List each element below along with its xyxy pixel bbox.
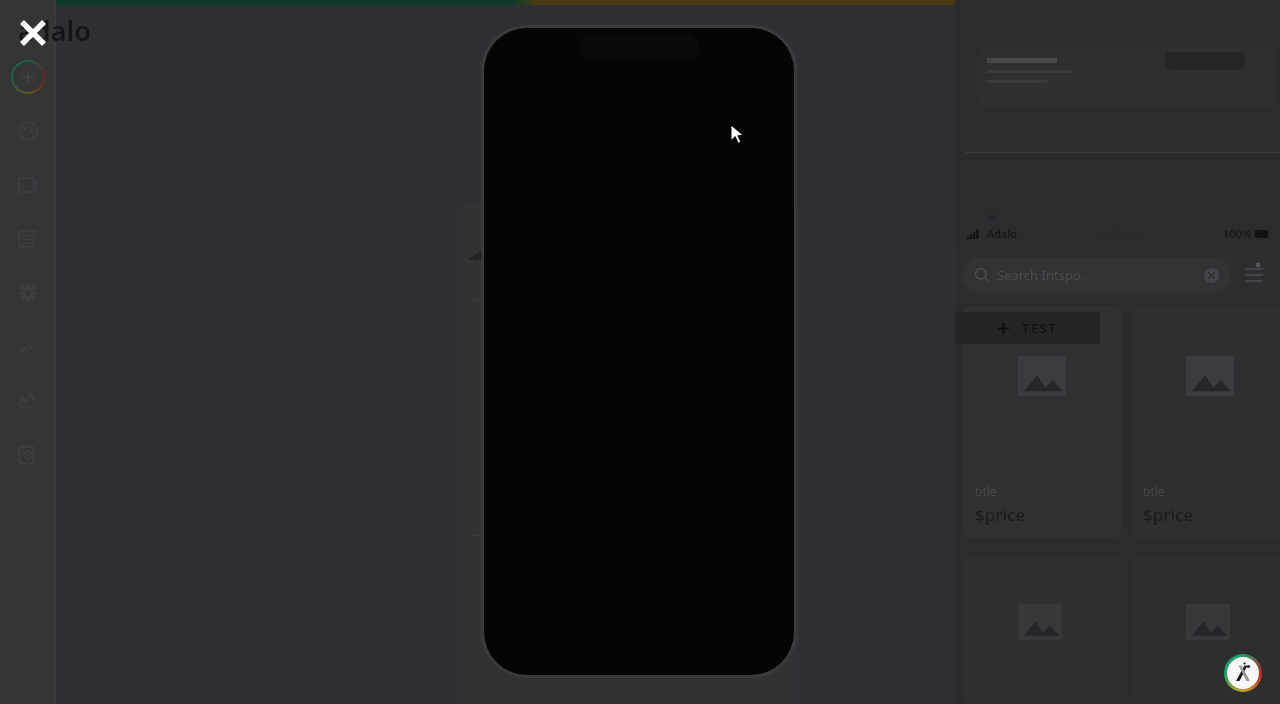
button[interactable]: Search Intspo. [963, 258, 1231, 292]
staticText: $price [975, 503, 1026, 526]
staticText: TEST [1022, 319, 1058, 337]
button[interactable]: title [963, 306, 1121, 538]
staticText: title [1143, 483, 1165, 499]
button[interactable]: Adalo [1224, 654, 1262, 692]
staticText: $price [1143, 503, 1194, 526]
staticText: title [975, 483, 997, 499]
button[interactable]: Close [14, 14, 52, 52]
staticText: Search Intspo. [997, 266, 1085, 284]
button[interactable] [1131, 556, 1280, 704]
button[interactable]: Add [6, 55, 50, 99]
button[interactable]: title [1131, 306, 1280, 538]
staticText: adalo [18, 12, 91, 49]
button[interactable]: Filter [1243, 262, 1265, 284]
button[interactable]: Clear [1204, 268, 1219, 283]
button[interactable]: TEST [955, 312, 1100, 344]
staticText: 100% [1223, 226, 1252, 241]
staticText: Adalo [987, 226, 1018, 241]
